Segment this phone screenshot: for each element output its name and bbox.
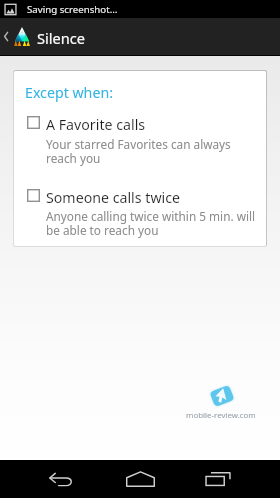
button[interactable]: Navigate up xyxy=(0,18,34,56)
staticText: Anyone calling twice within 5 min. will … xyxy=(46,208,256,238)
button[interactable]: A Favorite calls xyxy=(14,109,266,173)
button[interactable]: Recent apps xyxy=(193,460,243,498)
button[interactable]: Home xyxy=(115,460,166,498)
staticText: Your starred Favorites can always reach … xyxy=(46,136,231,166)
staticText: A Favorite calls xyxy=(46,115,146,134)
button[interactable]: Someone calls twice xyxy=(14,181,266,245)
staticText: Silence xyxy=(37,28,86,48)
staticText: mobile-review.com xyxy=(186,410,256,421)
staticText: Someone calls twice xyxy=(46,188,181,207)
staticText: Except when: xyxy=(25,83,113,102)
staticText: Saving screenshot… xyxy=(27,3,118,16)
button[interactable]: Back xyxy=(36,460,86,498)
